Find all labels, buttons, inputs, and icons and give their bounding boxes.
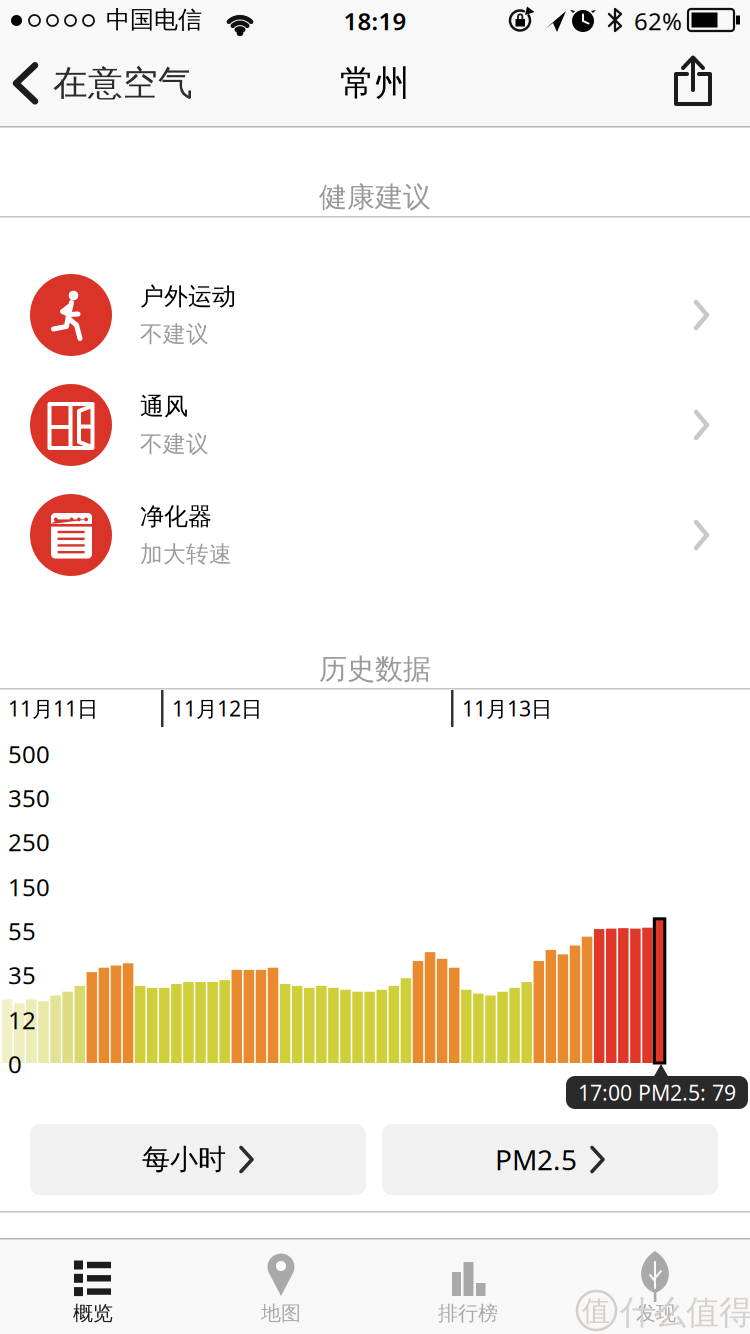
staticText: 12 — [8, 1004, 36, 1036]
staticText: 350 — [8, 782, 50, 814]
button[interactable]: PM2.5 — [382, 1124, 718, 1195]
button[interactable] — [674, 56, 712, 106]
button[interactable]: 地图 — [0, 0, 187, 96]
button[interactable]: 户外运动 — [0, 260, 750, 370]
button[interactable]: 每小时 — [30, 1124, 366, 1195]
staticText: 11月13日 — [462, 694, 552, 722]
button[interactable]: 概览 — [0, 0, 187, 96]
staticText: 250 — [8, 826, 50, 858]
staticText: 什么值得买 — [620, 1292, 750, 1333]
staticText: 500 — [8, 738, 50, 770]
staticText: 地图 — [261, 1301, 301, 1326]
staticText: 值 — [582, 1294, 610, 1328]
button[interactable]: 排行榜 — [0, 0, 187, 96]
button[interactable]: 通风 — [0, 370, 750, 480]
staticText: 历史数据 — [319, 652, 431, 686]
staticText: 发现 — [636, 1301, 676, 1326]
staticText: 150 — [8, 871, 50, 903]
staticText: 概览 — [73, 1301, 113, 1326]
staticText: 35 — [8, 959, 36, 991]
staticText: 18:19 — [343, 5, 406, 37]
staticText: 加大转速 — [140, 540, 232, 568]
staticText: 常州 — [340, 62, 410, 105]
button[interactable]: 发现 — [0, 0, 187, 96]
staticText: 每小时 — [142, 1142, 226, 1177]
staticText: 0 — [8, 1048, 22, 1080]
staticText: 排行榜 — [438, 1301, 498, 1326]
staticText: 在意空气 — [53, 62, 193, 105]
staticText: 55 — [8, 915, 36, 947]
staticText: PM2.5 — [495, 1141, 577, 1178]
staticText: 净化器 — [140, 502, 212, 531]
staticText: 中国电信 — [106, 5, 202, 34]
staticText: 11月12日 — [172, 694, 262, 722]
staticText: 17:00 PM2.5: 79 — [578, 1078, 736, 1107]
staticText: 11月11日 — [8, 694, 98, 722]
staticText: 户外运动 — [140, 282, 236, 311]
staticText: 不建议 — [140, 320, 209, 348]
staticText: 通风 — [140, 392, 188, 421]
staticText: 62% — [634, 5, 682, 37]
button[interactable]: 净化器 — [0, 480, 750, 590]
button[interactable]: 在意空气 — [0, 62, 193, 105]
staticText: 不建议 — [140, 430, 209, 458]
staticText: 健康建议 — [319, 180, 431, 214]
